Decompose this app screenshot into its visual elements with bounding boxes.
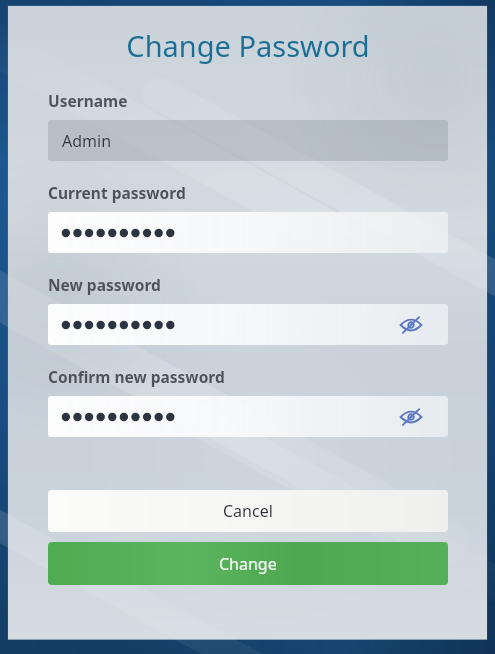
staticText: Username	[48, 90, 128, 111]
staticText: Change Password	[48, 26, 448, 65]
staticText: New password	[48, 274, 161, 295]
button[interactable]: Confirm new password	[48, 396, 448, 437]
button[interactable]: Toggle password visibility	[398, 315, 424, 335]
staticText: Confirm new password	[48, 366, 225, 387]
staticText: Change	[219, 553, 277, 575]
button[interactable]: Admin	[48, 120, 448, 161]
button[interactable]: Toggle password visibility	[398, 407, 424, 427]
button[interactable]: Change	[48, 542, 448, 585]
button[interactable]: New password	[48, 304, 448, 345]
staticText: Admin	[62, 130, 112, 152]
staticText: Cancel	[223, 500, 273, 522]
button[interactable]: Cancel	[48, 490, 448, 532]
staticText: Current password	[48, 182, 186, 203]
button[interactable]: Current password	[48, 212, 448, 253]
